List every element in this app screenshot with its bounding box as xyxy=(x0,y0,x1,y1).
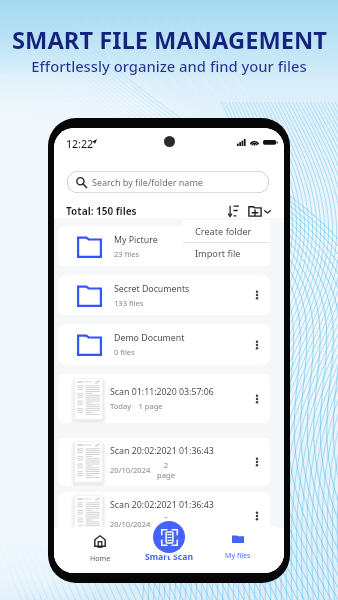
staticText: Search by file/folder name xyxy=(92,176,203,188)
staticText: Effortlessly organize and find your file… xyxy=(31,56,307,76)
staticText: Secret Documents xyxy=(114,283,190,295)
staticText: My files xyxy=(225,550,251,560)
staticText: Total: 150 files xyxy=(66,204,137,218)
staticText: 2 page xyxy=(157,460,175,480)
staticText: 20/10/2024 xyxy=(110,519,151,529)
staticText: Import file xyxy=(195,247,241,260)
button[interactable]: Scan 20:02:2021 01:36:43 xyxy=(58,492,270,540)
button[interactable]: Create folder xyxy=(183,220,270,242)
button[interactable]: More options xyxy=(250,455,264,469)
button[interactable]: Home xyxy=(69,527,131,573)
staticText: SMART FILE MANAGEMENT xyxy=(12,24,327,56)
button[interactable]: Scan 01:11:2020 03:57:06 xyxy=(58,374,270,423)
button[interactable]: Import file xyxy=(183,243,270,264)
button[interactable]: Smart Scan xyxy=(153,521,185,553)
button[interactable]: Sort xyxy=(228,205,239,217)
button[interactable]: More options xyxy=(250,392,264,406)
staticText: Scan 20:02:2021 01:36:43 xyxy=(110,499,214,511)
staticText: Create folder xyxy=(195,225,252,238)
staticText: Scan 01:11:2020 03:57:06 xyxy=(110,386,214,398)
staticText: My Picture xyxy=(114,234,158,246)
button[interactable]: My files xyxy=(207,527,269,573)
button[interactable]: More options xyxy=(250,288,264,302)
button[interactable]: More options xyxy=(250,509,264,523)
staticText: 23 files xyxy=(114,249,140,259)
staticText: Demo Document xyxy=(114,332,185,344)
staticText: 12:22 xyxy=(66,137,94,151)
button[interactable]: My Picture xyxy=(58,226,270,266)
staticText: 20/10/2024 xyxy=(110,465,151,475)
button[interactable]: More options xyxy=(250,338,264,352)
staticText: 2 page xyxy=(157,514,175,534)
staticText: Home xyxy=(90,553,111,563)
staticText: 1 page xyxy=(138,401,163,411)
staticText: Scan 20:02:2021 01:36:43 xyxy=(110,445,214,457)
staticText: 133 files xyxy=(114,298,144,308)
staticText: Today xyxy=(110,401,132,411)
button[interactable]: Create new xyxy=(248,205,271,217)
button[interactable]: Search by file/folder name xyxy=(67,171,269,193)
button[interactable]: Scan 20:02:2021 01:36:43 xyxy=(58,438,270,486)
staticText: 0 files xyxy=(114,347,135,357)
button[interactable]: Secret Documents xyxy=(58,275,270,315)
staticText: Smart Scan xyxy=(145,551,193,563)
button[interactable]: Smart Scan xyxy=(139,551,199,569)
button[interactable]: Demo Document xyxy=(58,324,270,365)
